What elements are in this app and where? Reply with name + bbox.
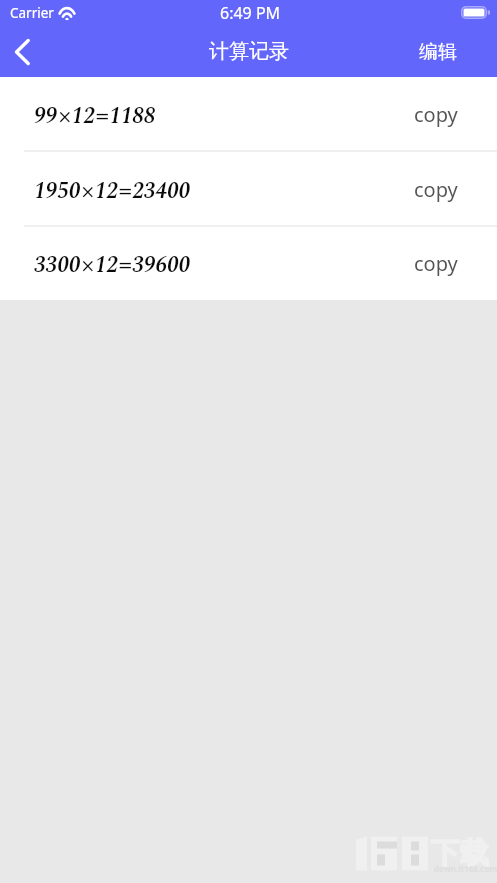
staticText: 计算记录	[209, 39, 289, 64]
staticText: down.it168.com	[434, 863, 497, 874]
staticText: Carrier	[10, 4, 54, 22]
staticText: 6:49 PM	[220, 2, 281, 24]
button[interactable]: 99×12=1188	[0, 77, 497, 152]
staticText: copy	[414, 101, 458, 128]
staticText: 编辑	[419, 40, 457, 64]
button[interactable]: 编辑	[419, 26, 457, 77]
staticText: 下载	[431, 835, 489, 872]
button[interactable]: Back	[0, 26, 48, 77]
staticText: copy	[414, 176, 458, 203]
staticText: 3300×12=39600	[34, 248, 191, 282]
staticText: 99×12=1188	[34, 99, 156, 133]
staticText: copy	[414, 250, 458, 277]
button[interactable]: 3300×12=39600	[0, 227, 497, 300]
staticText: 1950×12=23400	[34, 174, 191, 208]
button[interactable]: 1950×12=23400	[0, 152, 497, 227]
